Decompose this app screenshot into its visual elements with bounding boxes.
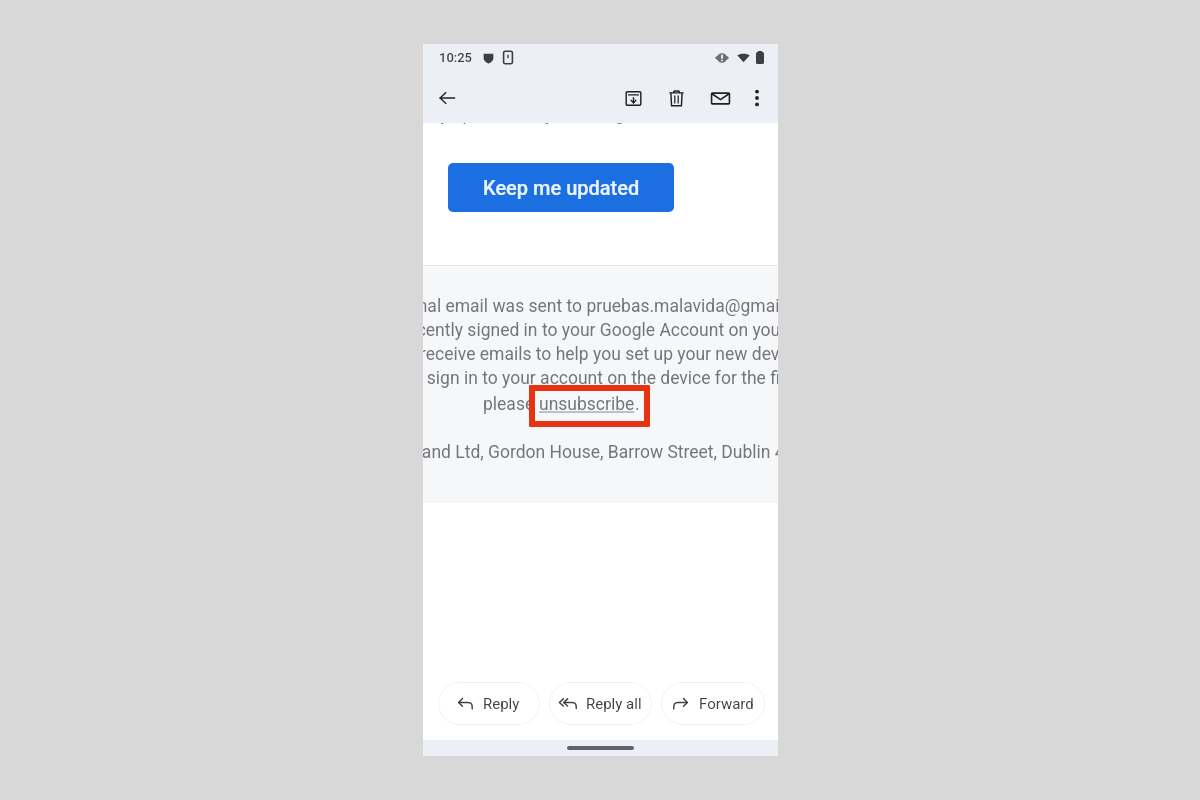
button[interactable]: Reply	[438, 682, 540, 725]
button[interactable]: More options	[738, 79, 776, 117]
staticText: Reply	[483, 695, 520, 713]
staticText: please	[483, 394, 539, 415]
staticText: device. You'll receive emails to help yo…	[423, 344, 778, 365]
button[interactable]: Keep me updated	[448, 163, 674, 212]
staticText: unsubscribe	[539, 394, 635, 415]
button[interactable]: Back	[428, 79, 466, 117]
button[interactable]: Reply all	[549, 682, 652, 725]
staticText: If you did not sign in to your account o…	[423, 368, 778, 389]
staticText: © 2022 Google Ireland Ltd, Gordon House,…	[423, 442, 778, 463]
button[interactable]: Delete	[657, 79, 695, 117]
staticText: This informational email was sent to pru…	[423, 296, 778, 317]
button[interactable]: Forward	[661, 682, 765, 725]
button[interactable]: Archive	[614, 79, 652, 117]
staticText: 10:25	[439, 50, 472, 65]
button[interactable]: Mark as unread	[701, 79, 739, 117]
staticText: Forward	[699, 695, 754, 713]
staticText: Stay updated on your Google Account	[423, 123, 778, 125]
staticText: Reply all	[586, 695, 642, 713]
staticText: because you recently signed in to your G…	[423, 320, 778, 341]
staticText: Keep me updated	[483, 176, 640, 199]
staticText: .	[635, 394, 640, 415]
